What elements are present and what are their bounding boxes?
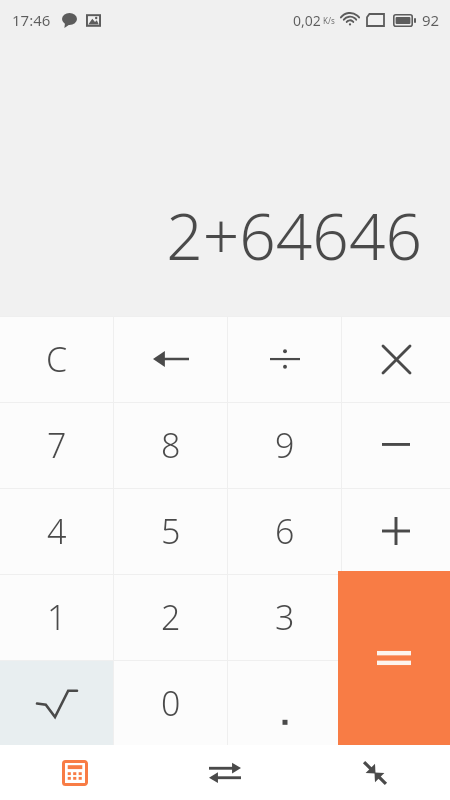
button[interactable]: Minus	[342, 402, 450, 488]
button[interactable]: 7	[0, 402, 113, 488]
button[interactable]: 2	[114, 574, 227, 660]
button[interactable]: Calculator	[0, 745, 150, 800]
staticText: 9	[275, 422, 295, 468]
button[interactable]: 0	[114, 660, 227, 745]
staticText: 7	[47, 422, 67, 468]
staticText: 0,02	[293, 11, 321, 30]
button[interactable]: Collapse	[300, 745, 450, 800]
button[interactable]: Multiply	[342, 316, 450, 402]
button[interactable]: 3	[228, 574, 341, 660]
staticText: 92	[422, 10, 440, 30]
staticText: K/s	[323, 15, 335, 26]
staticText: 2	[161, 594, 181, 640]
staticText: 8	[161, 422, 181, 468]
staticText: 0	[161, 680, 181, 726]
button[interactable]	[228, 660, 341, 745]
button[interactable]: Square root	[0, 660, 113, 745]
staticText: 17:46	[12, 10, 51, 30]
button[interactable]: Convert	[150, 745, 300, 800]
staticText: 1	[47, 594, 67, 640]
button[interactable]: 9	[228, 402, 341, 488]
staticText: 3	[275, 594, 295, 640]
button[interactable]: 1	[0, 574, 113, 660]
button[interactable]: 4	[0, 488, 113, 574]
button[interactable]: 6	[228, 488, 341, 574]
button[interactable]: Equals	[338, 571, 450, 745]
staticText: 6	[275, 508, 295, 554]
staticText: 5	[161, 508, 181, 554]
button[interactable]: 8	[114, 402, 227, 488]
button[interactable]: C	[0, 316, 113, 402]
button[interactable]: Divide	[228, 316, 341, 402]
button[interactable]: 5	[114, 488, 227, 574]
staticText: 2+64646	[0, 192, 422, 279]
staticText: C	[46, 336, 68, 382]
staticText: 4	[47, 508, 67, 554]
button[interactable]: Backspace	[114, 316, 227, 402]
button[interactable]: Plus	[342, 488, 450, 574]
